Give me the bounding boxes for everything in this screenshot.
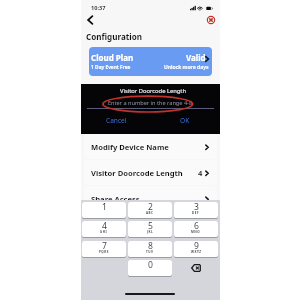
- staticText: TUV: [146, 250, 154, 254]
- button[interactable]: OK: [161, 115, 209, 126]
- button[interactable]: Share Access: [84, 186, 217, 211]
- staticText: Cancel: [106, 116, 127, 125]
- staticText: DEF: [192, 211, 200, 215]
- staticText: 6: [194, 221, 199, 232]
- button[interactable]: Modify Device Name: [84, 134, 217, 159]
- button[interactable]: Close: [204, 13, 218, 27]
- button[interactable]: 5: [128, 221, 172, 237]
- button[interactable]: Cloud Plan: [89, 47, 212, 76]
- staticText: PQRS: [99, 250, 109, 254]
- staticText: Cloud Plan: [91, 52, 134, 63]
- staticText: Modify Device Name: [91, 142, 169, 152]
- button[interactable]: 9: [174, 241, 218, 257]
- staticText: Configuration: [86, 31, 142, 42]
- staticText: WXYZ: [191, 250, 202, 254]
- staticText: 3: [194, 202, 199, 213]
- staticText: 10:37: [91, 4, 106, 12]
- button[interactable]: Backspace: [174, 260, 218, 276]
- button[interactable]: 0: [128, 260, 172, 276]
- staticText: Valid: [186, 52, 206, 63]
- button[interactable]: Visitor Doorcode Length: [84, 160, 217, 185]
- staticText: Share Access: [91, 194, 140, 204]
- button[interactable]: 8: [128, 241, 172, 257]
- staticText: 2: [148, 202, 153, 213]
- staticText: JKL: [147, 230, 154, 234]
- button[interactable]: 2: [128, 202, 172, 218]
- button[interactable]: 7: [82, 241, 126, 257]
- button[interactable]: 1: [82, 202, 126, 218]
- staticText: Unlock more days: [164, 64, 209, 71]
- button[interactable]: 3: [174, 202, 218, 218]
- staticText: 4: [102, 221, 107, 232]
- button[interactable]: 6: [174, 221, 218, 237]
- staticText: 1 Day Event Free: [91, 64, 131, 71]
- staticText: 1: [102, 202, 107, 213]
- button[interactable]: Cancel: [92, 115, 140, 126]
- button[interactable]: 4: [82, 221, 126, 237]
- staticText: MNO: [191, 230, 201, 234]
- staticText: 4: [198, 168, 203, 178]
- staticText: 9: [194, 241, 199, 252]
- staticText: Enter a number in the range 4-8: [108, 99, 193, 107]
- staticText: OK: [180, 116, 190, 125]
- staticText: Visitor Doorcode Length: [120, 87, 187, 95]
- staticText: Visitor Doorcode Length: [91, 168, 183, 178]
- staticText: GHI: [100, 230, 108, 234]
- staticText: 7: [102, 241, 107, 252]
- button[interactable]: Back: [83, 12, 97, 26]
- staticText: ABC: [146, 211, 154, 215]
- staticText: 8: [148, 241, 153, 252]
- staticText: 0: [148, 260, 153, 271]
- staticText: 5: [148, 221, 153, 232]
